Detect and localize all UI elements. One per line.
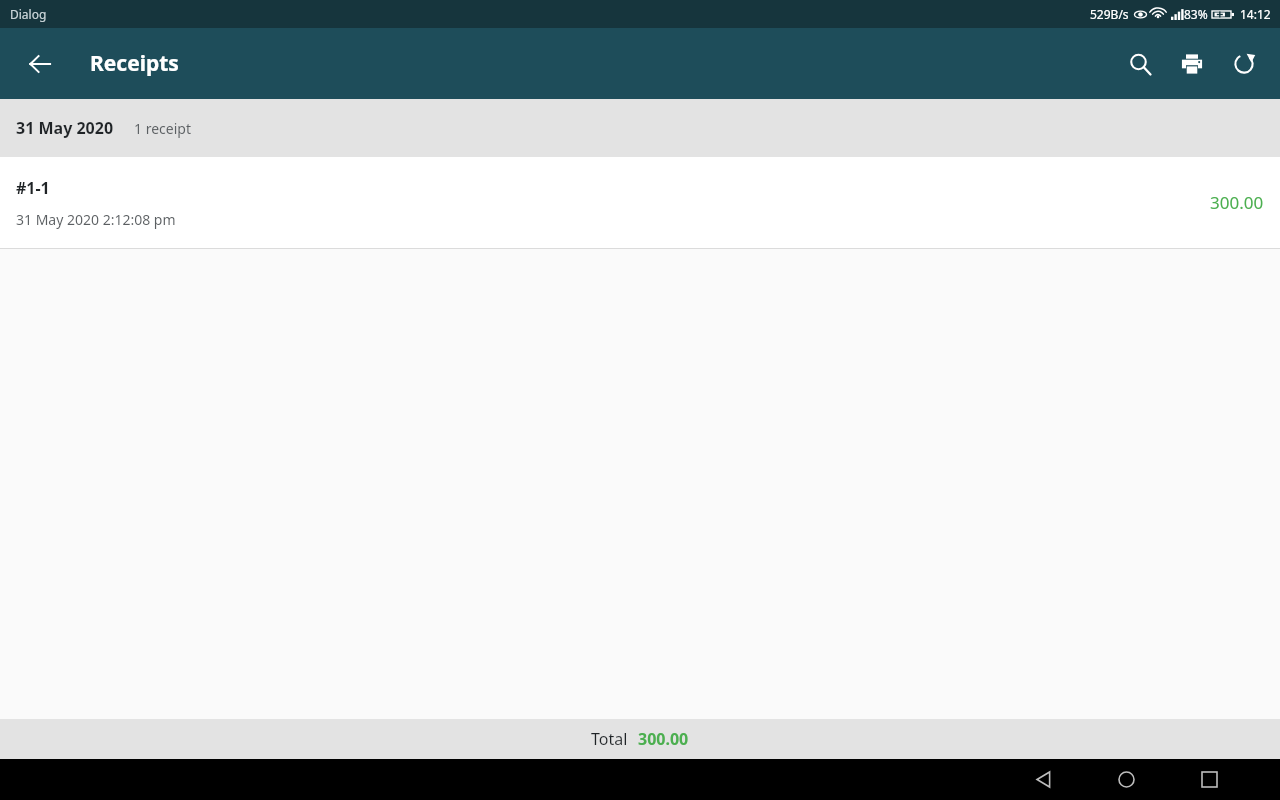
staticText: 1 receipt <box>134 119 191 138</box>
staticText: 300.00 <box>638 728 689 750</box>
button[interactable]: Search <box>1118 42 1162 86</box>
staticText: 14:12 <box>1240 6 1271 22</box>
button[interactable]: Print <box>1170 42 1214 86</box>
button[interactable]: Home <box>1102 759 1150 800</box>
button[interactable]: Recents <box>1185 759 1233 800</box>
button[interactable]: Back <box>16 40 64 88</box>
staticText: 31 May 2020 <box>16 117 114 139</box>
staticText: Receipts <box>90 49 179 78</box>
staticText: 31 May 2020 2:12:08 pm <box>16 210 176 229</box>
button[interactable]: Refresh <box>1222 42 1266 86</box>
staticText: Dialog <box>10 6 47 22</box>
staticText: 529B/s <box>1090 6 1129 22</box>
staticText: 83% <box>1184 6 1208 22</box>
button[interactable]: Back <box>1019 759 1067 800</box>
staticText: 300.00 <box>1210 191 1264 214</box>
staticText: #1-1 <box>16 177 50 199</box>
staticText: Total <box>591 728 628 750</box>
button[interactable]: #1-1 <box>0 157 1280 249</box>
